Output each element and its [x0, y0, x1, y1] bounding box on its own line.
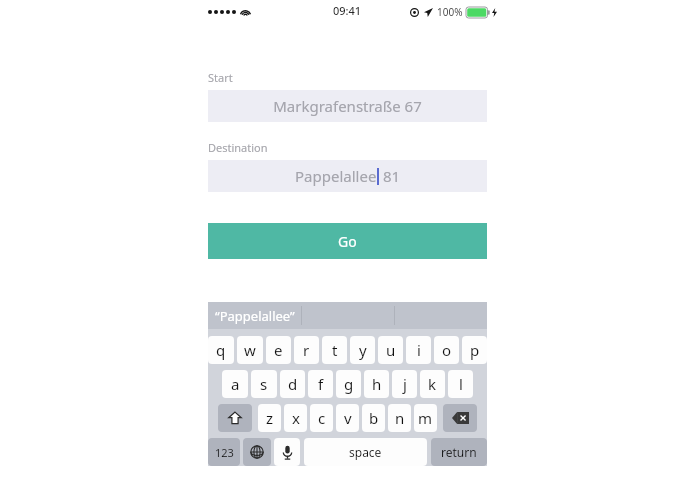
button[interactable]: Backspace [443, 404, 477, 432]
staticText: r [303, 340, 310, 360]
button[interactable]: x [284, 404, 307, 432]
staticText: z [266, 408, 274, 428]
button[interactable]: v [336, 404, 359, 432]
staticText: m [418, 408, 433, 428]
staticText: o [442, 340, 452, 360]
button[interactable]: w [237, 336, 263, 364]
button[interactable]: l [448, 370, 473, 398]
button[interactable]: Go [208, 223, 487, 259]
button[interactable]: 123 [208, 438, 240, 466]
staticText: q [216, 340, 226, 360]
staticText: y [359, 340, 367, 360]
staticText: k [428, 374, 437, 394]
button[interactable]: i [406, 336, 431, 364]
staticText: s [260, 374, 268, 394]
staticText: Destination [208, 140, 268, 155]
button[interactable]: f [308, 370, 333, 398]
button[interactable]: h [364, 370, 389, 398]
staticText: “Pappelallee” [215, 307, 295, 325]
button[interactable]: return [431, 438, 487, 466]
staticText: u [386, 340, 396, 360]
staticText: j [403, 374, 407, 394]
staticText: l [459, 374, 463, 394]
button[interactable]: q [208, 336, 234, 364]
staticText: return [441, 444, 477, 460]
staticText: p [470, 340, 480, 360]
staticText: f [318, 374, 324, 394]
staticText: h [372, 374, 382, 394]
button[interactable]: g [336, 370, 361, 398]
button[interactable]: z [258, 404, 281, 432]
staticText: c [318, 408, 326, 428]
staticText: 81 [379, 166, 401, 186]
button[interactable]: e [266, 336, 291, 364]
staticText: Start [208, 70, 233, 85]
staticText: v [344, 408, 352, 428]
button[interactable]: n [388, 404, 411, 432]
button[interactable]: j [392, 370, 417, 398]
staticText: b [369, 408, 379, 428]
button[interactable]: Shift [218, 404, 252, 432]
button[interactable]: Dictate [274, 438, 300, 466]
staticText: Markgrafenstraße 67 [273, 96, 422, 116]
staticText: d [288, 374, 298, 394]
button[interactable]: r [294, 336, 319, 364]
staticText: 123 [215, 445, 234, 460]
staticText: i [417, 340, 421, 360]
button[interactable]: c [310, 404, 333, 432]
button[interactable]: a [222, 370, 248, 398]
button[interactable]: space [304, 438, 427, 466]
staticText: g [344, 374, 354, 394]
staticText: t [332, 340, 338, 360]
button[interactable]: “Pappelallee” [208, 302, 301, 329]
button[interactable]: u [378, 336, 403, 364]
button[interactable]: y [350, 336, 375, 364]
button[interactable]: s [251, 370, 277, 398]
staticText: a [231, 374, 240, 394]
staticText: Go [338, 232, 357, 251]
staticText: 09:41 [333, 3, 362, 18]
staticText: space [349, 444, 382, 460]
button[interactable]: m [414, 404, 437, 432]
staticText: w [244, 340, 256, 360]
button[interactable]: k [420, 370, 445, 398]
staticText: Pappelallee [295, 166, 377, 186]
staticText: e [274, 340, 283, 360]
button[interactable]: d [280, 370, 305, 398]
button[interactable]: t [322, 336, 347, 364]
button[interactable]: Change keyboard [243, 438, 271, 466]
button[interactable]: Pappelallee [208, 160, 487, 192]
staticText: n [395, 408, 405, 428]
staticText: x [292, 408, 300, 428]
button[interactable]: Markgrafenstraße 67 [208, 90, 487, 122]
button[interactable]: p [462, 336, 487, 364]
button[interactable]: o [434, 336, 459, 364]
staticText: 100% [437, 5, 463, 19]
button[interactable]: b [362, 404, 385, 432]
